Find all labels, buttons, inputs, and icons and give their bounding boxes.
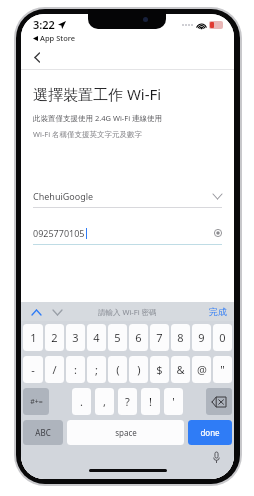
button[interactable]: ABC <box>23 420 63 445</box>
staticText: 2 <box>51 330 58 345</box>
staticText: ; <box>95 362 98 377</box>
button[interactable]: 完成 <box>209 306 227 317</box>
staticText: ChehuiGoogle <box>33 190 94 202</box>
staticText: 0925770105 <box>33 227 85 239</box>
button[interactable]: done <box>188 420 232 445</box>
staticText: 9 <box>198 330 205 345</box>
staticText: & <box>176 362 185 377</box>
staticText: $ <box>156 362 163 377</box>
button[interactable]: ? <box>118 388 137 415</box>
staticText: ) <box>137 362 141 377</box>
staticText: / <box>52 362 57 377</box>
button[interactable]: - <box>23 356 43 383</box>
staticText: ' <box>172 394 175 409</box>
staticText: ! <box>149 394 152 409</box>
button[interactable]: 9 <box>192 324 211 351</box>
button[interactable]: Back <box>26 46 48 68</box>
button[interactable]: 6 <box>129 324 148 351</box>
staticText: ( <box>116 362 120 377</box>
staticText: 4 <box>93 330 100 345</box>
staticText: , <box>103 394 106 409</box>
staticText: #+= <box>30 397 43 407</box>
staticText: 0 <box>219 330 226 345</box>
button[interactable]: / <box>45 356 64 383</box>
button[interactable]: ) <box>129 356 148 383</box>
staticText: 1 <box>30 330 37 345</box>
staticText: 請輸入 Wi-Fi 密碼 <box>98 307 157 317</box>
staticText: 6 <box>135 330 142 345</box>
button[interactable]: " <box>213 356 232 383</box>
button[interactable]: 1 <box>23 324 43 351</box>
staticText: space <box>115 427 137 438</box>
staticText: 選擇裝置工作 Wi-Fi <box>33 84 162 104</box>
button[interactable]: @ <box>192 356 211 383</box>
other: Show password <box>214 229 222 237</box>
staticText: 完成 <box>209 306 227 317</box>
staticText: . <box>80 394 83 409</box>
staticText: Wi-Fi 名稱僅支援英文字元及數字 <box>33 129 143 139</box>
button[interactable]: 8 <box>171 324 190 351</box>
staticText: : <box>74 362 77 377</box>
button[interactable]: Next field <box>49 304 65 320</box>
button[interactable]: , <box>95 388 114 415</box>
staticText: ABC <box>35 427 51 438</box>
staticText: 3:22 <box>33 17 55 32</box>
staticText: 此裝置僅支援使用 2.4G Wi-Fi 連線使用 <box>33 113 163 123</box>
button[interactable]: 0 <box>213 324 232 351</box>
staticText: @ <box>197 362 207 377</box>
button[interactable]: 5 <box>108 324 127 351</box>
button[interactable]: 0925770105 <box>33 222 222 245</box>
staticText: 8 <box>177 330 184 345</box>
staticText: " <box>220 362 225 377</box>
staticText: - <box>31 362 35 377</box>
button[interactable]: Dictation <box>211 452 222 463</box>
staticText: 5 <box>114 330 121 345</box>
button[interactable]: ChehuiGoogle <box>33 185 222 208</box>
button[interactable]: 2 <box>45 324 64 351</box>
button[interactable]: $ <box>150 356 169 383</box>
button[interactable]: #+= <box>23 388 49 415</box>
button[interactable]: ' <box>164 388 183 415</box>
button[interactable]: 7 <box>150 324 169 351</box>
button[interactable]: space <box>67 420 184 445</box>
staticText: App Store <box>40 33 76 43</box>
button[interactable]: ; <box>87 356 106 383</box>
staticText: 7 <box>156 330 163 345</box>
button[interactable]: Previous field <box>28 304 44 320</box>
button[interactable]: 4 <box>87 324 106 351</box>
button[interactable]: 3 <box>66 324 85 351</box>
staticText: 3 <box>72 330 79 345</box>
staticText: ? <box>125 394 130 409</box>
button[interactable]: Backspace <box>206 388 232 415</box>
button[interactable]: & <box>171 356 190 383</box>
button[interactable]: : <box>66 356 85 383</box>
button[interactable]: ! <box>141 388 160 415</box>
staticText: done <box>200 427 220 438</box>
button[interactable]: ( <box>108 356 127 383</box>
button[interactable]: . <box>72 388 91 415</box>
